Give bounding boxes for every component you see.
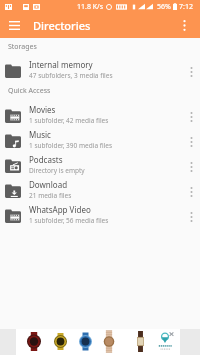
button[interactable]: Movies xyxy=(0,101,200,126)
button[interactable]: Open navigation drawer xyxy=(0,13,28,38)
button[interactable]: Podcasts xyxy=(0,151,200,176)
staticText: Storages xyxy=(8,42,37,52)
staticText: 7:12 xyxy=(179,2,193,12)
button[interactable]: Item options xyxy=(182,101,200,126)
staticText: Internal memory xyxy=(29,59,93,70)
button[interactable]: Music xyxy=(0,126,200,151)
staticText: Music xyxy=(29,129,51,140)
button[interactable]: WhatsApp Video xyxy=(0,201,200,226)
button[interactable]: More options xyxy=(172,13,197,38)
button[interactable]: Internal memory xyxy=(0,56,200,81)
staticText: Directory is empty xyxy=(29,166,85,175)
button[interactable]: Item options xyxy=(182,56,200,81)
staticText: 1 subfolder, 390 media files xyxy=(29,141,113,150)
button[interactable]: Item options xyxy=(182,201,200,226)
staticText: 56% xyxy=(157,2,171,12)
button[interactable]: Item options xyxy=(182,176,200,201)
staticText: Movies xyxy=(29,104,56,115)
staticText: Quick Access xyxy=(8,86,51,96)
staticText: Directories xyxy=(33,18,91,33)
staticText: 1 subfolder, 56 media files xyxy=(29,216,109,225)
staticText: 21 media files xyxy=(29,191,72,200)
staticText: 47 subfolders, 3 media files xyxy=(29,71,113,80)
button[interactable]: Advertisement xyxy=(16,329,180,355)
button[interactable]: Item options xyxy=(182,151,200,176)
button[interactable]: Item options xyxy=(182,126,200,151)
staticText: Podcasts xyxy=(29,154,63,165)
staticText: WhatsApp Video xyxy=(29,204,91,215)
staticText: 1 subfolder, 42 media files xyxy=(29,116,109,125)
button[interactable]: Download xyxy=(0,176,200,201)
staticText: Download xyxy=(29,179,68,190)
staticText: 11.8 K/s xyxy=(77,2,103,12)
